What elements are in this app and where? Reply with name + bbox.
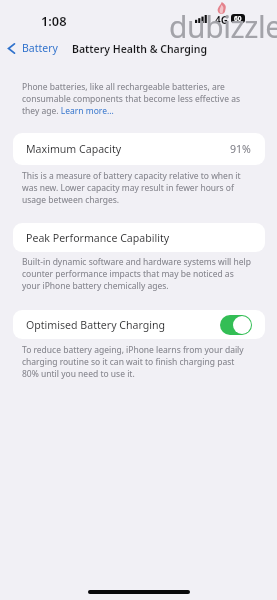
staticText: counter performance impacts that may be … xyxy=(22,268,234,280)
button[interactable]: Optimised Battery Charging toggle xyxy=(220,315,252,335)
button[interactable]: Optimised Battery Charging xyxy=(13,310,265,339)
staticText: Phone batteries, like all rechargeable b… xyxy=(22,81,225,93)
staticText: Battery Health & Charging xyxy=(72,42,207,56)
staticText: usage between charges. xyxy=(22,194,120,206)
button[interactable]: Maximum Capacity xyxy=(13,133,265,165)
staticText: This is a measure of battery capacity re… xyxy=(22,170,241,182)
staticText: they age. Learn more... xyxy=(22,105,114,117)
staticText: Battery xyxy=(22,41,58,55)
staticText: charging routine so it can wait to finis… xyxy=(22,356,235,368)
staticText: your iPhone battery chemically ages. xyxy=(22,280,169,292)
staticText: 60 xyxy=(234,14,242,23)
staticText: Maximum Capacity xyxy=(26,142,122,156)
staticText: Peak Performance Capability xyxy=(26,231,170,245)
button[interactable]: Peak Performance Capability xyxy=(13,223,265,252)
staticText: 4G xyxy=(215,13,228,27)
staticText: 91% xyxy=(230,142,251,156)
staticText: was new. Lower capacity may result in fe… xyxy=(22,182,234,194)
staticText: 1:08 xyxy=(41,12,67,29)
staticText: 80% until you need to use it. xyxy=(22,368,135,380)
staticText: dubizzle xyxy=(169,6,277,47)
staticText: To reduce battery ageing, iPhone learns … xyxy=(22,344,244,356)
staticText: Built-in dynamic software and hardware s… xyxy=(22,256,251,268)
button[interactable]: Battery xyxy=(8,41,58,55)
staticText: consumable components that become less e… xyxy=(22,93,240,105)
staticText: Optimised Battery Charging xyxy=(26,318,166,332)
